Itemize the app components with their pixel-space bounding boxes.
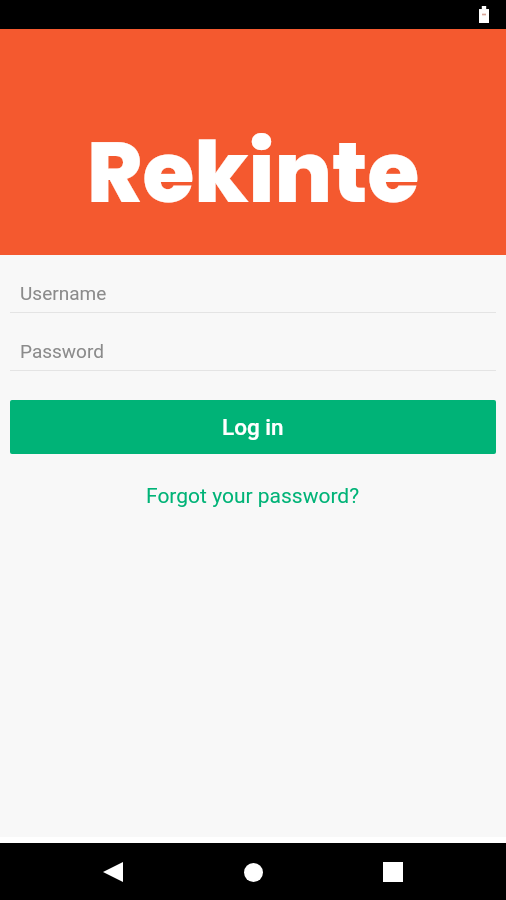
button[interactable]: Password xyxy=(10,333,496,371)
button[interactable]: Home xyxy=(226,845,280,899)
staticText: Log in xyxy=(222,414,284,440)
staticText: Forgot your password? xyxy=(146,484,360,509)
staticText: Username xyxy=(20,282,107,304)
staticText: Password xyxy=(20,340,104,362)
staticText: Rekinte xyxy=(87,114,420,232)
button[interactable]: Back xyxy=(86,845,140,899)
button[interactable]: Recent apps xyxy=(366,845,420,899)
button[interactable]: Username xyxy=(10,275,496,313)
button[interactable]: Forgot your password? xyxy=(0,474,506,518)
button[interactable]: Log in xyxy=(10,400,496,454)
